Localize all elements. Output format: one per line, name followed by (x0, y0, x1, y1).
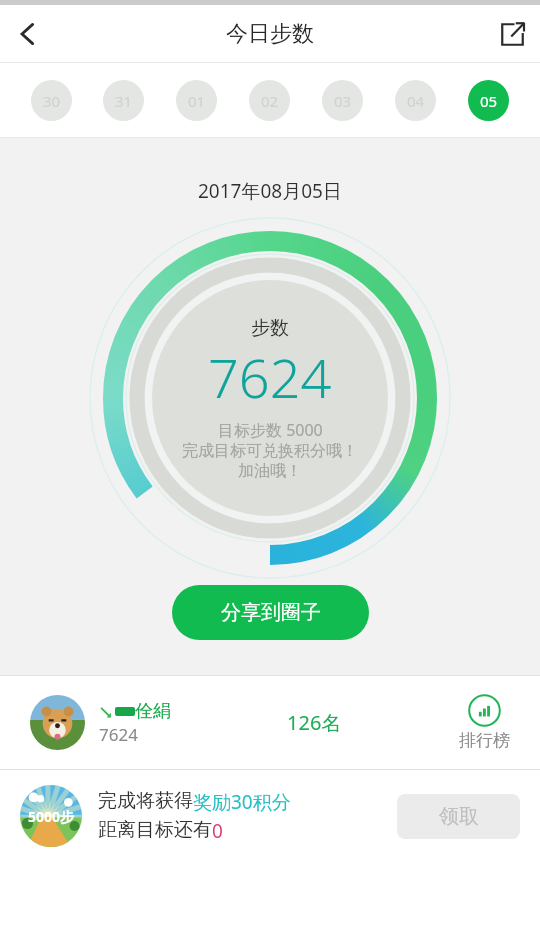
staticText: 31 (115, 91, 133, 111)
staticText: 目标步数 5000 (218, 419, 323, 441)
staticText: 0 (212, 818, 223, 844)
staticText: 7624 (208, 340, 332, 414)
staticText: 加油哦！ (238, 461, 302, 481)
staticText: 佺絹 (135, 700, 171, 723)
staticText: 01 (188, 91, 206, 111)
button[interactable]: Back (0, 6, 56, 62)
staticText: 完成将获得 (98, 789, 193, 813)
button[interactable]: 佺絹 (0, 676, 540, 769)
staticText: 领取 (439, 804, 479, 829)
button[interactable]: Share (484, 6, 540, 62)
staticText: 7624 (99, 723, 138, 746)
button[interactable]: 03 (322, 80, 363, 121)
staticText: 距离目标还有 (98, 818, 212, 842)
staticText: 05 (480, 91, 498, 111)
staticText: 04 (407, 91, 425, 111)
button[interactable]: 领取 (397, 794, 520, 839)
staticText: 奖励30积分 (193, 789, 291, 815)
staticText: 126名 (287, 709, 342, 736)
button[interactable]: 31 (103, 80, 144, 121)
button[interactable]: 01 (176, 80, 217, 121)
button[interactable]: 02 (249, 80, 290, 121)
button[interactable]: 05 (468, 80, 509, 121)
button[interactable]: 04 (395, 80, 436, 121)
staticText: 今日步数 (226, 20, 314, 48)
staticText: 5000步 (28, 807, 75, 826)
staticText: 步数 (251, 316, 289, 340)
button[interactable]: 分享到圈子 (172, 585, 369, 640)
button[interactable]: 排行榜 (459, 694, 510, 751)
staticText: 02 (261, 91, 279, 111)
staticText: 分享到圈子 (221, 600, 321, 625)
button[interactable]: 30 (31, 80, 72, 121)
staticText: 排行榜 (459, 730, 510, 751)
staticText: 2017年08月05日 (198, 178, 342, 204)
staticText: 完成目标可兑换积分哦！ (182, 441, 358, 461)
staticText: 03 (334, 91, 352, 111)
staticText: 30 (43, 91, 61, 111)
